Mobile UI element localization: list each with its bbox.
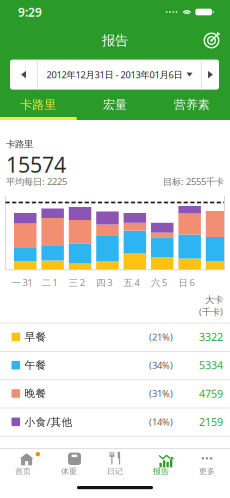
button[interactable]: 营养素 xyxy=(153,90,230,120)
staticText: 报告 xyxy=(153,466,169,476)
button[interactable]: 日记 xyxy=(92,452,138,476)
staticText: 六 5 xyxy=(151,276,167,289)
staticText: 15574 xyxy=(6,150,66,178)
staticText: 5334 xyxy=(199,358,223,372)
staticText: 日记 xyxy=(107,466,123,476)
button[interactable]: 下一周 xyxy=(202,60,219,90)
staticText: 2012年12月31日 - 2013年01月6日 xyxy=(46,68,182,81)
staticText: 9:29 xyxy=(18,4,42,20)
staticText: (千卡) xyxy=(199,305,223,318)
button[interactable]: 上一周 xyxy=(10,60,37,90)
button[interactable]: 选择日期范围 xyxy=(38,60,201,90)
staticText: 2159 xyxy=(199,415,223,429)
staticText: 一 31 xyxy=(11,276,32,289)
staticText: (21%) xyxy=(149,331,173,343)
button[interactable]: 卡路里 xyxy=(0,90,77,120)
staticText: 日 6 xyxy=(178,276,194,289)
staticText: 晚餐 xyxy=(25,387,47,400)
staticText: 四 3 xyxy=(96,276,112,289)
staticText: 五 4 xyxy=(124,276,140,289)
staticText: 卡路里 xyxy=(20,97,56,112)
staticText: 大卡 xyxy=(205,294,223,306)
button[interactable]: 报告 xyxy=(138,452,184,476)
staticText: 二 1 xyxy=(41,276,57,289)
staticText: 首页 xyxy=(15,466,31,476)
button[interactable]: 首页 xyxy=(0,452,46,476)
staticText: 4759 xyxy=(199,386,223,401)
staticText: 体重 xyxy=(61,466,77,476)
staticText: (14%) xyxy=(149,416,173,428)
staticText: 小食/其他 xyxy=(25,415,73,429)
staticText: 宏量 xyxy=(103,97,127,112)
staticText: 平均每日: 2225 xyxy=(6,175,67,188)
staticText: (31%) xyxy=(149,387,173,400)
button[interactable]: 宏量 xyxy=(77,90,153,120)
staticText: 卡路里 xyxy=(6,138,33,150)
button[interactable]: 目标 xyxy=(203,32,230,49)
staticText: 报告 xyxy=(102,32,128,49)
staticText: (34%) xyxy=(149,359,173,371)
button[interactable]: 体重 xyxy=(46,452,92,476)
staticText: 营养素 xyxy=(174,97,210,112)
staticText: 更多 xyxy=(199,466,215,476)
staticText: 早餐 xyxy=(25,330,47,343)
staticText: 3322 xyxy=(199,330,223,344)
staticText: 目标: 2555千卡 xyxy=(163,175,224,188)
staticText: 午餐 xyxy=(25,359,47,372)
button[interactable]: 更多 xyxy=(184,452,230,476)
staticText: 三 2 xyxy=(69,276,85,289)
